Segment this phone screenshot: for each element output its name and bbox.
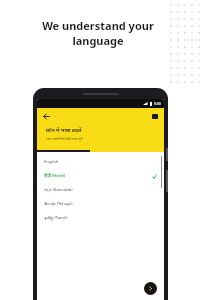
staticText: ಕನ್ನಡ (Kannada) (44, 187, 73, 193)
staticText: தமிழ் (Tamil) (44, 215, 68, 221)
staticText: आप अपने लिए कोई भाषा चुनें (46, 136, 83, 141)
button[interactable]: हिंदी (Hindi) (37, 169, 164, 183)
staticText: తెలుగు (Telugu) (44, 201, 73, 208)
staticText: English (44, 159, 59, 165)
button[interactable]: Next (144, 282, 157, 295)
button[interactable]: ಕನ್ನಡ (Kannada) (37, 183, 164, 197)
staticText: We understand your language (30, 18, 166, 48)
button[interactable]: తెలుగు (Telugu) (37, 197, 164, 211)
button[interactable]: More options (149, 110, 161, 122)
staticText: फ़ोन में भाषा बदलें (46, 127, 82, 134)
staticText: 9:30 (154, 101, 161, 106)
button[interactable]: Back (40, 110, 52, 122)
button[interactable]: தமிழ் (Tamil) (37, 211, 164, 225)
button[interactable]: English (37, 155, 164, 169)
staticText: हिंदी (Hindi) (44, 173, 66, 179)
